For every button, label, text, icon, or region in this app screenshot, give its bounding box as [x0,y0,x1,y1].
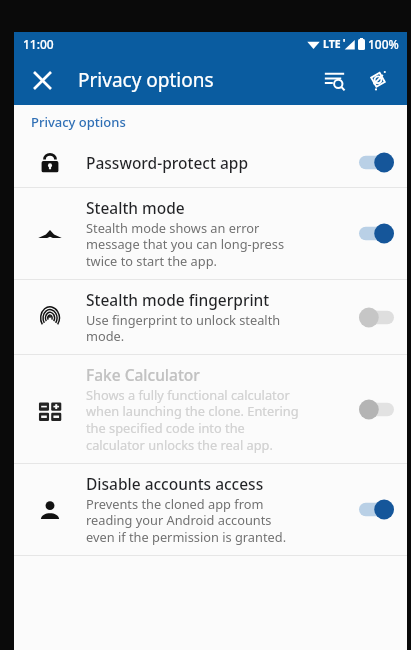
other: Stealth mode [345,224,407,243]
button[interactable]: Close [23,61,61,99]
other: Stealth mode fingerprint [345,308,407,327]
staticText: Privacy options [78,67,214,93]
other: Fake Calculator [345,400,407,419]
staticText: LTE [323,37,341,51]
staticText: Stealth mode shows an error message that… [86,219,285,270]
staticText: Use fingerprint to unlock stealth mode. [86,311,281,345]
button[interactable]: Search list [313,59,355,101]
button[interactable]: Stealth mode fingerprint [14,280,407,354]
other: Disable accounts access [345,500,407,519]
staticText: Privacy options [31,113,126,131]
staticText: 100% [368,36,399,52]
staticText: Password-protect app [86,152,249,173]
staticText: Shows a fully functional calculator when… [86,386,299,454]
button[interactable]: Fake Calculator [14,355,407,463]
staticText: Stealth mode fingerprint [86,289,270,310]
button[interactable]: Password-protect app [14,138,407,187]
staticText: Stealth mode [86,197,185,218]
staticText: Prevents the cloned app from reading you… [86,495,287,546]
other: Password-protect app [345,153,407,172]
button[interactable]: Disable options [357,59,399,101]
button[interactable]: Stealth mode [14,188,407,279]
staticText: Disable accounts access [86,473,264,494]
staticText: Fake Calculator [86,364,200,385]
button[interactable]: Disable accounts access [14,464,407,555]
staticText: 11:00 [23,36,54,52]
